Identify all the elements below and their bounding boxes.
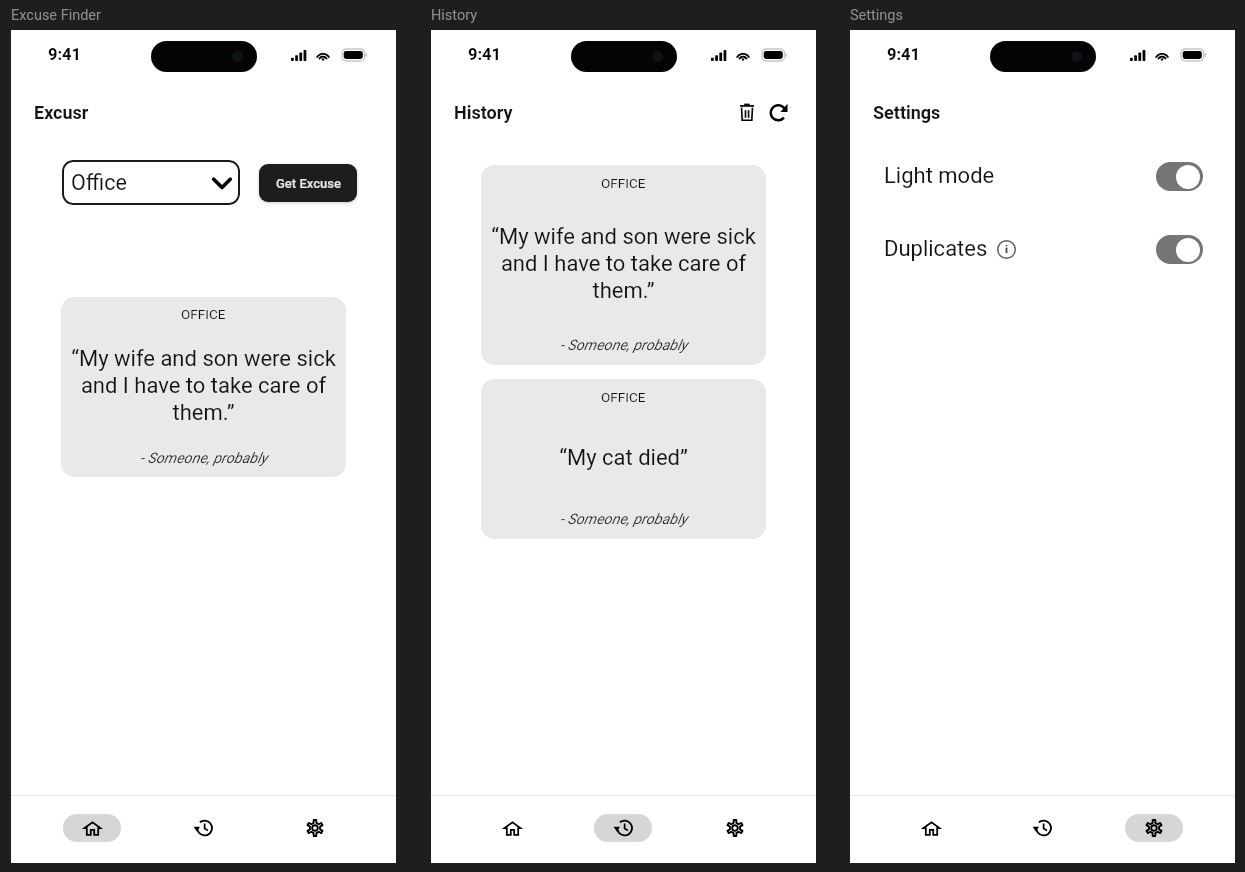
staticText: OFFICE [601,175,646,191]
button[interactable]: History [147,796,259,860]
staticText: Excuse Finder [11,7,101,24]
staticText: Excusr [34,102,89,123]
button[interactable]: Home [36,796,147,860]
staticText: Office [71,170,127,195]
button[interactable]: Office [62,160,240,205]
staticText: History [431,7,478,24]
button[interactable]: Light mode [850,152,1235,200]
button[interactable]: Clear history [732,97,762,127]
button[interactable]: Light mode toggle [1156,162,1203,191]
button[interactable]: Home [875,796,986,860]
button[interactable]: OFFICE [61,297,346,477]
staticText: Settings [850,7,903,24]
button[interactable]: OFFICE [481,379,766,539]
staticText: 9:41 [887,45,921,64]
button[interactable]: Duplicates [850,225,1235,273]
staticText: 9:41 [468,45,502,64]
staticText: Duplicates [884,236,988,262]
button[interactable]: History [567,796,679,860]
button[interactable]: Settings [679,796,791,860]
staticText: Get Excuse [276,176,341,191]
button[interactable]: Settings [259,796,371,860]
button[interactable]: Duplicates toggle [1156,235,1203,264]
staticText: “My cat died” [559,445,688,471]
staticText: - Someone, probably [560,511,688,528]
staticText: Light mode [884,163,995,189]
staticText: History [454,102,513,123]
staticText: 9:41 [48,45,82,64]
staticText: OFFICE [601,389,646,405]
button[interactable]: Get Excuse [259,164,357,202]
button[interactable]: History [986,796,1098,860]
staticText: “My wife and son were sick and I have to… [490,224,757,304]
button[interactable]: Home [456,796,567,860]
staticText: OFFICE [181,306,226,322]
button[interactable]: OFFICE [481,165,766,365]
staticText: - Someone, probably [560,337,688,354]
staticText: Settings [873,102,941,123]
button[interactable]: Refresh [764,97,794,127]
staticText: - Someone, probably [140,450,268,467]
staticText: “My wife and son were sick and I have to… [70,346,337,426]
button[interactable]: Settings [1098,796,1210,860]
